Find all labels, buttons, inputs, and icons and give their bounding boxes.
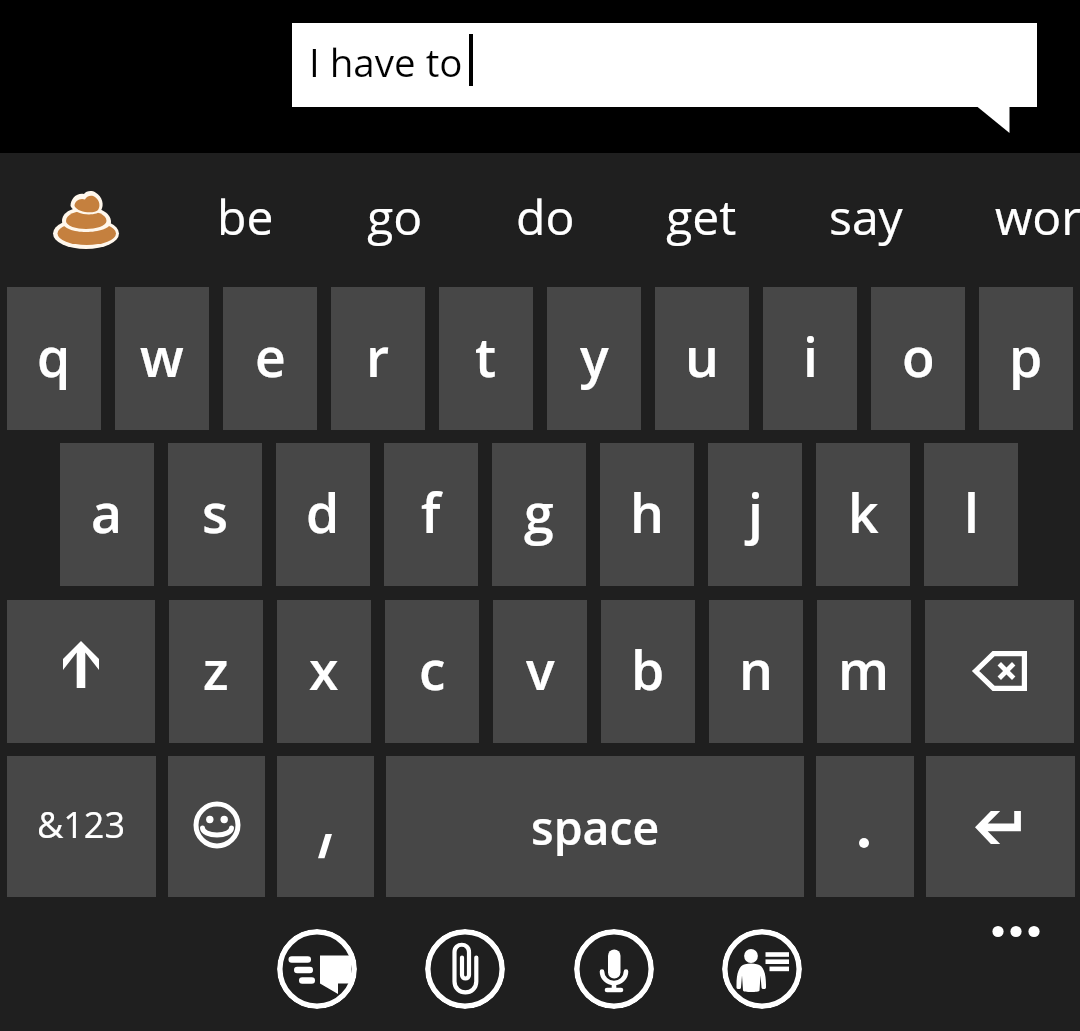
staticText: r [366, 320, 390, 393]
staticText: g [524, 476, 554, 549]
staticText: p [1009, 320, 1043, 393]
button[interactable]: Voice input [574, 929, 654, 1009]
button[interactable]: More options [986, 914, 1046, 950]
staticText: u [685, 320, 719, 393]
staticText: q [37, 320, 71, 393]
staticText: w [140, 320, 184, 393]
staticText: get [666, 184, 737, 249]
button[interactable]: say [811, 153, 885, 287]
button[interactable]: m [817, 600, 911, 743]
button[interactable]: Comma [277, 756, 374, 897]
button[interactable]: do [498, 153, 557, 287]
staticText: y [580, 320, 609, 393]
button[interactable]: x [277, 600, 371, 743]
button[interactable]: space [386, 756, 804, 897]
staticText: I have to [309, 36, 463, 88]
staticText: b [631, 633, 665, 706]
staticText: z [203, 633, 229, 706]
button[interactable]: Attach file [425, 929, 505, 1009]
staticText: s [202, 476, 229, 549]
button[interactable]: I have to [292, 23, 1037, 107]
button[interactable]: k [816, 443, 910, 586]
button[interactable]: t [439, 287, 533, 430]
staticText: n [739, 633, 773, 706]
staticText: x [309, 633, 339, 706]
button[interactable]: p [979, 287, 1073, 430]
button[interactable]: Messages [277, 929, 357, 1009]
staticText: space [531, 795, 660, 858]
button[interactable]: Backspace [925, 600, 1074, 743]
button[interactable]: r [331, 287, 425, 430]
staticText: i [803, 320, 818, 393]
button[interactable]: work [977, 153, 1080, 287]
staticText: be [217, 184, 274, 249]
staticText: j [748, 476, 763, 549]
button[interactable]: b [601, 600, 695, 743]
button[interactable]: Period [816, 756, 914, 897]
button[interactable]: n [709, 600, 803, 743]
staticText: o [902, 320, 935, 393]
staticText: k [848, 476, 879, 549]
button[interactable]: z [169, 600, 263, 743]
button[interactable]: Emoji keyboard [168, 756, 265, 897]
staticText: say [829, 184, 903, 249]
staticText: work [995, 184, 1080, 249]
button[interactable]: go [349, 153, 405, 287]
button[interactable]: s [168, 443, 262, 586]
button[interactable]: d [276, 443, 370, 586]
button[interactable]: q [7, 287, 101, 430]
button[interactable]: h [600, 443, 694, 586]
button[interactable]: v [493, 600, 587, 743]
button[interactable]: g [492, 443, 586, 586]
button[interactable]: w [115, 287, 209, 430]
staticText: m [838, 633, 890, 706]
staticText: do [516, 184, 575, 249]
button[interactable]: get [648, 153, 719, 287]
staticText: f [421, 476, 441, 549]
staticText: c [419, 633, 446, 706]
button[interactable]: y [547, 287, 641, 430]
button[interactable]: i [763, 287, 857, 430]
staticText: a [91, 476, 123, 549]
button[interactable]: Shift [7, 600, 155, 743]
button[interactable]: j [708, 443, 802, 586]
staticText: e [255, 320, 286, 393]
staticText: go [367, 184, 423, 249]
button[interactable]: Emoji suggestion [26, 153, 146, 287]
button[interactable]: l [924, 443, 1018, 586]
staticText: t [475, 320, 497, 393]
button[interactable]: be [199, 153, 256, 287]
staticText: &123 [37, 800, 126, 849]
staticText: d [306, 476, 340, 549]
button[interactable]: c [385, 600, 479, 743]
button[interactable]: e [223, 287, 317, 430]
button[interactable]: u [655, 287, 749, 430]
button[interactable]: Enter [926, 756, 1075, 897]
button[interactable]: o [871, 287, 965, 430]
button[interactable]: a [60, 443, 154, 586]
staticText: h [630, 476, 664, 549]
button[interactable]: Contacts [722, 929, 802, 1009]
button[interactable]: f [384, 443, 478, 586]
staticText: v [526, 633, 555, 706]
staticText: l [964, 476, 979, 549]
button[interactable]: &123 [7, 756, 156, 897]
